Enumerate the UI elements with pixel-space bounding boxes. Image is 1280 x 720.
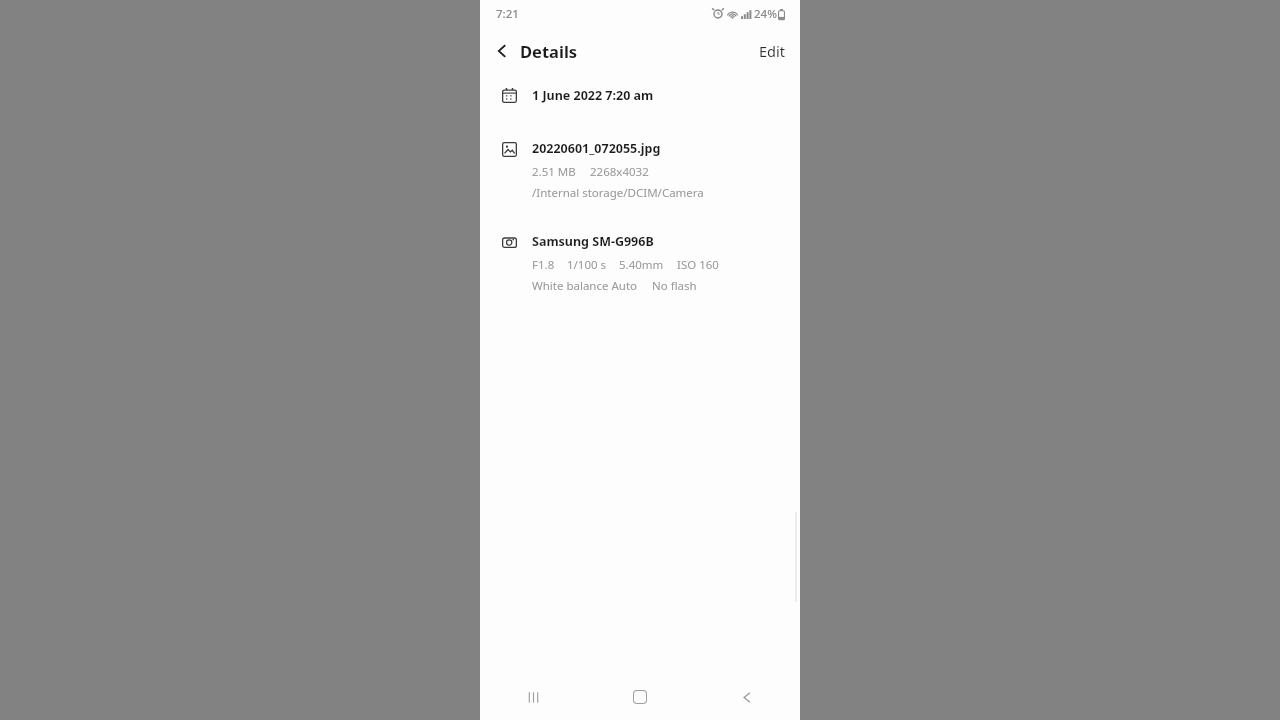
staticText: 7:21 bbox=[496, 6, 519, 22]
staticText: ISO 160 bbox=[677, 257, 719, 273]
button[interactable]: Samsung SM-G996B bbox=[480, 231, 800, 296]
button[interactable]: 1 June 2022 7:20 am bbox=[480, 82, 800, 108]
button[interactable]: Back bbox=[480, 34, 586, 68]
staticText: 2268x4032 bbox=[590, 164, 649, 180]
staticText: 1/100 s bbox=[567, 257, 607, 273]
staticText: 20220601_072055.jpg bbox=[532, 140, 661, 157]
staticText: 24% bbox=[754, 6, 777, 22]
staticText: Details bbox=[520, 40, 578, 62]
staticText: Samsung SM-G996B bbox=[532, 233, 654, 250]
other: Back bbox=[494, 43, 510, 59]
staticText: 1 June 2022 7:20 am bbox=[532, 87, 654, 104]
staticText: No flash bbox=[652, 278, 697, 294]
button[interactable]: Home bbox=[586, 674, 693, 720]
button[interactable]: Recents bbox=[480, 674, 586, 720]
staticText: /Internal storage/DCIM/Camera bbox=[532, 185, 704, 201]
staticText: White balance Auto bbox=[532, 278, 638, 294]
staticText: 2.51 MB bbox=[532, 164, 576, 180]
button[interactable]: Back bbox=[693, 674, 800, 720]
staticText: 5.40mm bbox=[619, 257, 664, 273]
staticText: F1.8 bbox=[532, 257, 555, 273]
button[interactable]: 20220601_072055.jpg bbox=[480, 138, 800, 203]
button[interactable]: Edit bbox=[744, 33, 800, 69]
staticText: Edit bbox=[759, 41, 785, 61]
